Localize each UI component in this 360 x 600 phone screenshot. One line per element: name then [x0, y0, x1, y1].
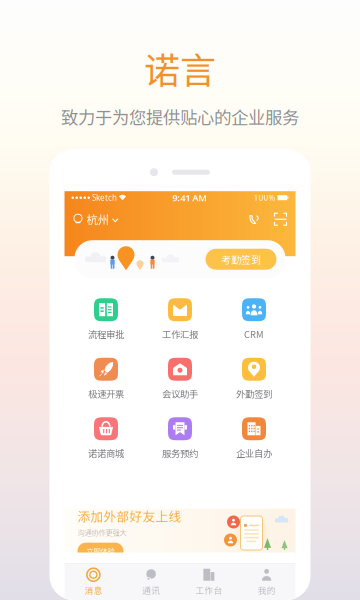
button[interactable]: 外勤签到 [217, 358, 291, 400]
button[interactable]: Scan [260, 213, 286, 225]
staticText: 外勤签到 [236, 387, 272, 400]
button[interactable]: Call [248, 213, 260, 225]
button[interactable]: 流程审批 [69, 298, 143, 341]
staticText: 消息 [84, 584, 102, 596]
staticText: 极速开票 [88, 387, 124, 400]
button[interactable]: 工作台 [180, 568, 238, 596]
staticText: 工作台 [195, 584, 222, 596]
staticText: 杭州 [86, 211, 108, 227]
button[interactable]: 会议助手 [143, 358, 217, 400]
staticText: 通讯 [142, 584, 160, 596]
staticText: 9:41 AM [172, 191, 207, 204]
staticText: 会议助手 [162, 387, 198, 400]
button[interactable]: 考勤签到 [205, 249, 276, 270]
staticText: 服务预约 [162, 446, 198, 460]
button[interactable]: CRM [217, 298, 291, 341]
button[interactable]: 服务预约 [143, 417, 217, 460]
staticText: CRM [244, 327, 264, 341]
button[interactable]: 通讯 [122, 568, 180, 596]
staticText: 流程审批 [88, 327, 124, 341]
button[interactable]: 工作汇报 [143, 298, 217, 341]
button[interactable]: 我的 [238, 568, 296, 596]
staticText: 诺诺商城 [88, 446, 124, 460]
staticText: 添加外部好友上线 [77, 507, 181, 525]
button[interactable]: 企业自办 [217, 417, 291, 460]
button[interactable]: 消息 [64, 568, 122, 596]
staticText: 立即体验 [86, 546, 114, 556]
staticText: 致力于为您提供贴心的企业服务 [61, 104, 299, 129]
button[interactable]: 杭州 [73, 211, 118, 227]
staticText: 沟通协作更强大 [77, 527, 126, 538]
staticText: 考勤签到 [221, 252, 261, 266]
button[interactable]: 诺诺商城 [69, 417, 143, 460]
staticText: 企业自办 [236, 446, 272, 460]
staticText: 100% [253, 192, 275, 203]
staticText: 工作汇报 [162, 327, 198, 341]
staticText: Sketch [90, 192, 117, 203]
button[interactable]: 极速开票 [69, 358, 143, 400]
staticText: 诺言 [144, 42, 216, 94]
staticText: 我的 [258, 584, 276, 596]
